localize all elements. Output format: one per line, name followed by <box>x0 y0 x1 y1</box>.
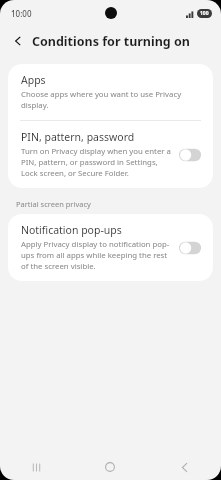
button[interactable]: Notification pop-ups <box>8 214 213 281</box>
staticText: Turn on Privacy display when you enter a… <box>21 146 171 179</box>
button[interactable]: Toggle <box>179 240 203 256</box>
staticText: Choose apps where you want to use Privac… <box>21 89 203 111</box>
staticText: PIN, pattern, password <box>21 130 135 144</box>
button[interactable]: Apps <box>8 64 213 120</box>
button[interactable]: PIN, pattern, password <box>8 121 213 188</box>
staticText: Notification pop-ups <box>21 223 122 237</box>
button[interactable]: Home <box>73 454 147 480</box>
button[interactable]: Back <box>147 454 221 480</box>
staticText: Apply Privacy display to notification po… <box>21 239 171 272</box>
staticText: Apps <box>21 73 46 87</box>
staticText: 100 <box>200 10 209 17</box>
staticText: Conditions for turning on <box>32 33 190 50</box>
staticText: 10:00 <box>11 8 32 19</box>
staticText: Partial screen privacy <box>16 199 91 209</box>
button[interactable]: Back <box>7 30 29 52</box>
button[interactable]: Toggle <box>179 147 203 163</box>
button[interactable]: Recent apps <box>0 454 73 480</box>
